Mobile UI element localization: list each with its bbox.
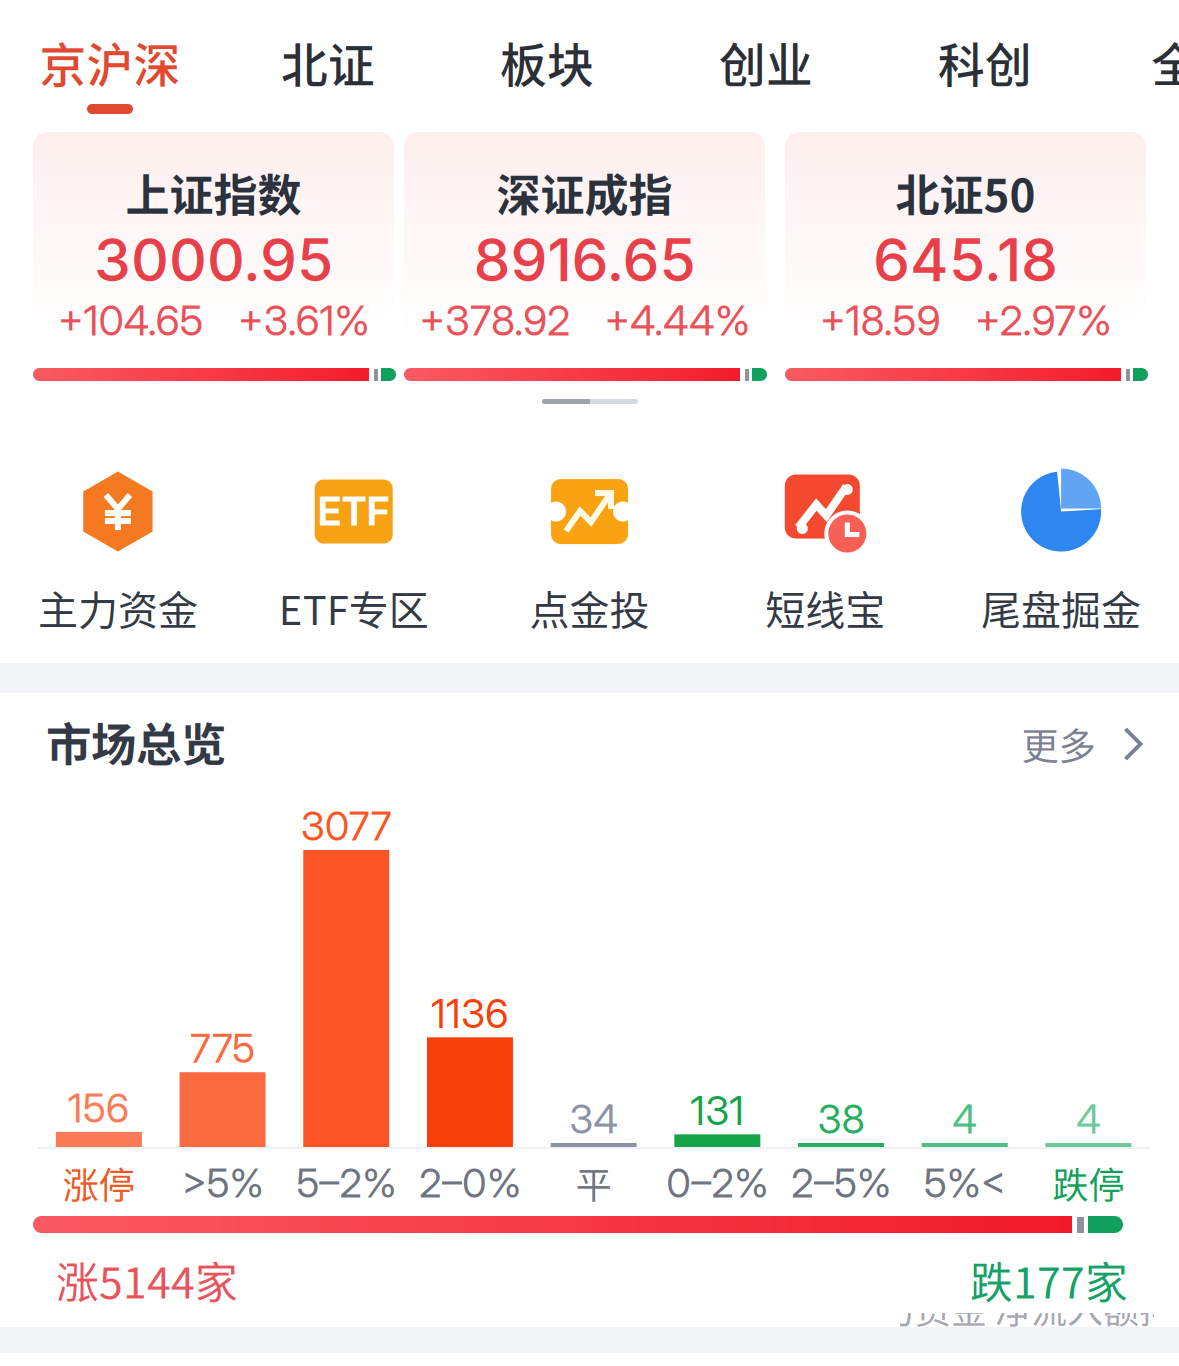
button[interactable]: 点金投 — [472, 440, 707, 640]
button[interactable]: 尾盘掘金 — [943, 440, 1179, 640]
staticText: +3.61% — [237, 295, 369, 345]
staticText: 131 — [690, 1086, 744, 1135]
staticText: 156 — [68, 1084, 130, 1132]
staticText: 3000.95 — [94, 224, 333, 295]
staticText: 全 — [1151, 28, 1179, 96]
staticText: 主力资金 — [38, 578, 198, 636]
button[interactable]: 短线宝 — [707, 440, 943, 640]
staticText: +4.44% — [604, 295, 750, 345]
staticText: 645.18 — [873, 224, 1058, 295]
button[interactable]: 创业 — [681, 14, 851, 110]
staticText: 跌停 — [1052, 1157, 1124, 1209]
staticText: +378.92 — [419, 295, 570, 345]
staticText: +18.59 — [819, 295, 940, 345]
staticText: 上证指数 — [125, 161, 301, 224]
staticText: 科创 — [938, 28, 1032, 96]
staticText: 深证成指 — [496, 161, 672, 224]
button[interactable]: 主力资金 — [0, 440, 236, 640]
staticText: 短线宝 — [765, 578, 885, 636]
staticText: 0–2% — [666, 1159, 768, 1207]
staticText: 2–0% — [419, 1159, 521, 1207]
staticText: 涨停 — [63, 1157, 135, 1209]
staticText: 尾盘掘金 — [981, 578, 1141, 636]
staticText: +104.65 — [57, 295, 203, 345]
staticText: 4 — [952, 1095, 977, 1143]
staticText: 点金投 — [529, 578, 649, 636]
staticText: 3077 — [301, 802, 392, 850]
staticText: 更多 — [1021, 717, 1095, 771]
staticText: 北证50 — [895, 161, 1035, 224]
staticText: 涨5144家 — [56, 1249, 238, 1311]
staticText: 38 — [818, 1095, 865, 1143]
staticText: 跌177家 — [970, 1249, 1128, 1311]
staticText: ETF — [318, 488, 390, 535]
button[interactable]: 上证指数 — [33, 132, 394, 336]
staticText: 1136 — [431, 989, 509, 1038]
staticText: 主力资金 净流入额排行 — [843, 1282, 1179, 1334]
button[interactable]: 北证 — [243, 14, 413, 110]
staticText: ETF专区 — [279, 578, 429, 636]
staticText: 5–2% — [296, 1159, 396, 1207]
button[interactable]: 深证成指 — [404, 132, 765, 336]
staticText: 2–5% — [791, 1159, 891, 1207]
button[interactable]: ETF — [236, 440, 472, 640]
staticText: 创业 — [719, 28, 813, 96]
staticText: 5%< — [924, 1159, 1006, 1207]
staticText: 4 — [1076, 1095, 1101, 1143]
staticText: 775 — [190, 1024, 255, 1072]
staticText: >5% — [181, 1159, 263, 1207]
staticText: 34 — [569, 1095, 618, 1143]
button[interactable]: 京沪深 — [15, 14, 205, 110]
button[interactable]: 科创 — [900, 14, 1070, 110]
staticText: 市场总览 — [46, 709, 226, 775]
staticText: 北证 — [281, 28, 375, 96]
staticText: 8916.65 — [473, 224, 695, 295]
button[interactable]: 板块 — [462, 14, 632, 110]
staticText: 板块 — [500, 28, 594, 96]
staticText: 京沪深 — [39, 28, 180, 96]
button[interactable]: 北证50 — [785, 132, 1146, 336]
staticText: +2.97% — [974, 295, 1111, 345]
button[interactable]: 更多 — [1009, 714, 1155, 774]
button[interactable]: 全 — [1130, 14, 1179, 110]
staticText: 平 — [576, 1157, 612, 1209]
